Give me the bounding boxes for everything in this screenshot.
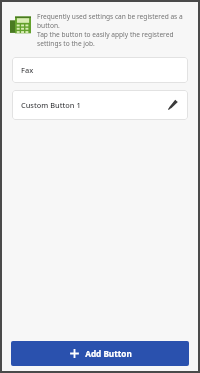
other: Edit: [167, 99, 179, 111]
button[interactable]: Add Button: [11, 341, 189, 366]
staticText: Frequently used settings can be register…: [37, 12, 183, 30]
staticText: Tap the button to easily apply the regis…: [37, 30, 174, 48]
button[interactable]: Fax: [12, 57, 188, 83]
staticText: Custom Button 1: [21, 100, 81, 110]
button[interactable]: Custom Button 1: [12, 90, 188, 120]
staticText: Fax: [21, 65, 34, 75]
staticText: Add Button: [85, 348, 132, 359]
